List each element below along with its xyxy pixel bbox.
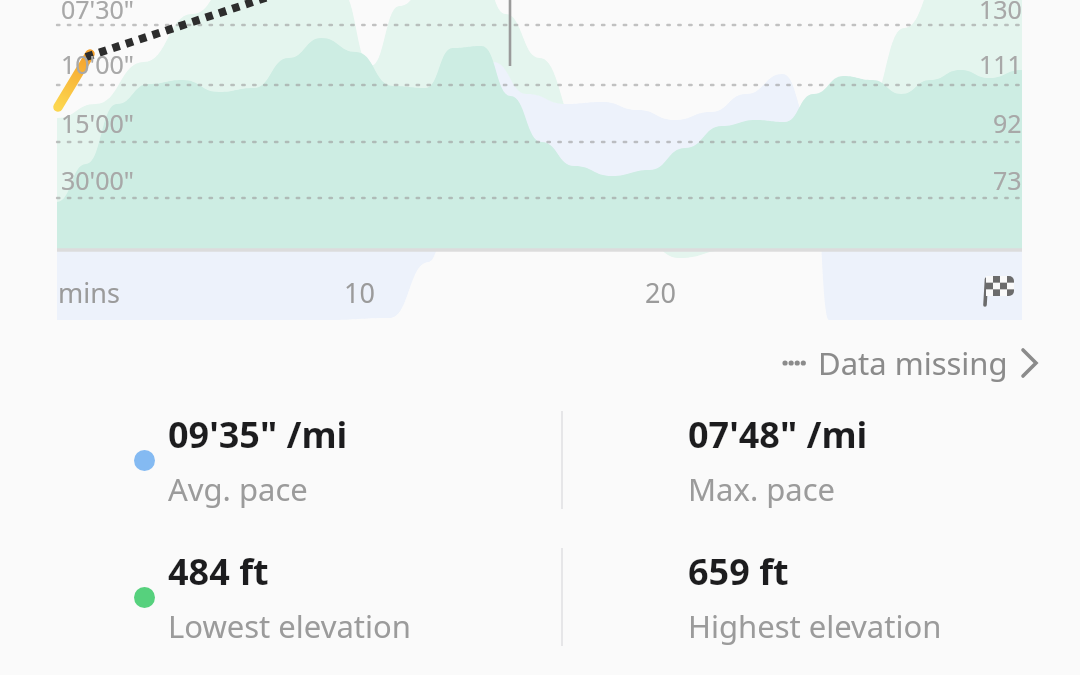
button[interactable]: Data missing	[776, 336, 1046, 390]
staticText: 10'00"	[61, 47, 135, 81]
staticText: 30'00"	[61, 163, 135, 197]
staticText: 07'48" /mi	[688, 410, 868, 459]
staticText: 92	[993, 106, 1022, 140]
staticText: 73	[993, 163, 1022, 197]
staticText: 484 ft	[168, 547, 269, 596]
staticText: Data missing	[818, 342, 1008, 384]
button[interactable]: 484 ft	[120, 545, 550, 649]
staticText: 15'00"	[61, 106, 135, 140]
staticText: 09'35" /mi	[168, 410, 348, 459]
button[interactable]: 07'48" /mi	[640, 408, 1070, 512]
button[interactable]: Finish	[978, 268, 1024, 314]
staticText: 20	[645, 274, 676, 311]
button[interactable]: 659 ft	[640, 545, 1070, 649]
staticText: 659 ft	[688, 547, 789, 596]
staticText: 130	[979, 0, 1022, 26]
staticText: Max. pace	[688, 468, 836, 510]
staticText: 111	[979, 47, 1022, 81]
staticText: Highest elevation	[688, 605, 942, 647]
staticText: Lowest elevation	[168, 605, 411, 647]
staticText: mins	[58, 274, 120, 311]
staticText: 07'30"	[61, 0, 135, 26]
staticText: Avg. pace	[168, 468, 308, 510]
staticText: 10	[344, 274, 375, 311]
button[interactable]: 09'35" /mi	[120, 408, 550, 512]
